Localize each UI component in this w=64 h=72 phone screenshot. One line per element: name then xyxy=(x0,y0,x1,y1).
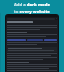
button[interactable]: Address bar xyxy=(5,14,59,72)
button[interactable] xyxy=(7,47,57,52)
button[interactable]: Link xyxy=(44,39,57,41)
staticText: Add a dark mode xyxy=(2,2,62,8)
button[interactable]: Link xyxy=(7,39,26,41)
button[interactable]: Link xyxy=(27,39,43,41)
staticText: to every website xyxy=(2,9,62,15)
